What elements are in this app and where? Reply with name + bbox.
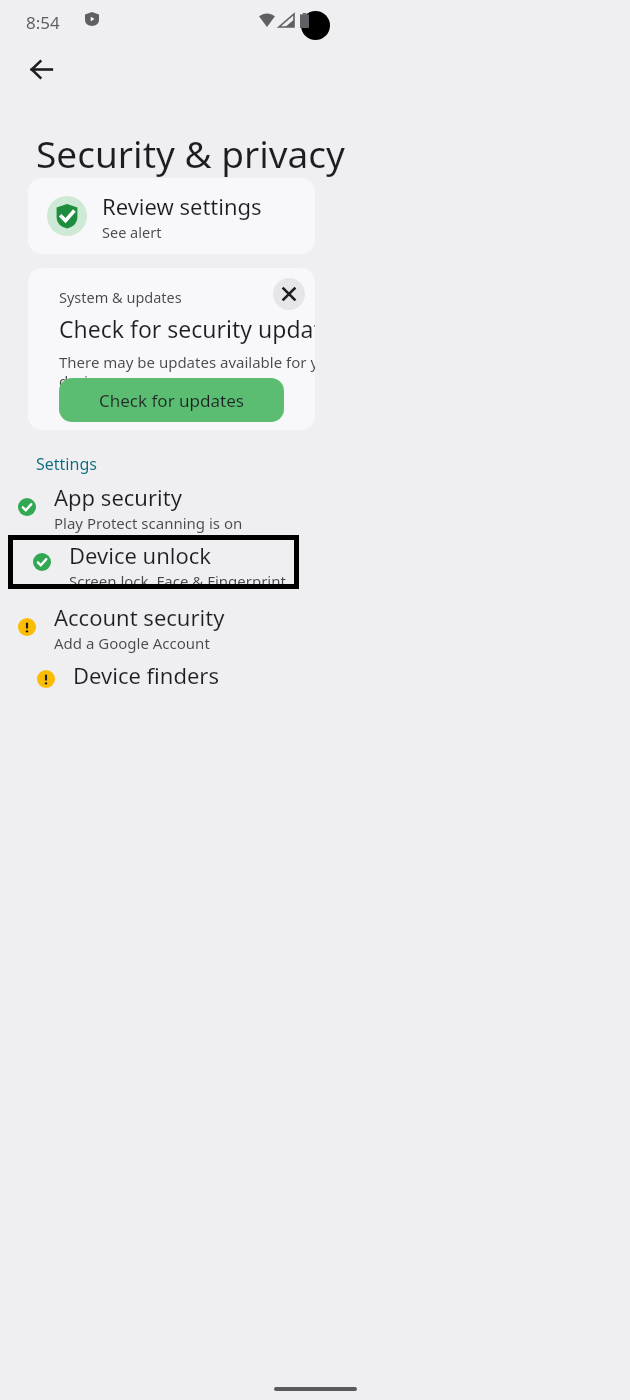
staticText: Device finders xyxy=(73,660,219,690)
button[interactable]: Device finders xyxy=(0,660,630,700)
staticText: Review settings xyxy=(102,191,262,221)
staticText: Check for updates xyxy=(99,389,244,412)
button[interactable]: Account security xyxy=(0,600,630,654)
staticText: System & updates xyxy=(59,287,182,307)
staticText: Check for security updates xyxy=(59,313,315,344)
staticText: 8:54 xyxy=(26,11,60,34)
staticText: Settings xyxy=(36,453,97,475)
staticText: Screen lock, Face & Fingerprint Unlock xyxy=(69,571,294,584)
staticText: App security xyxy=(54,482,182,512)
staticText: Account security xyxy=(54,602,225,632)
button[interactable]: Review settings xyxy=(28,178,315,254)
staticText: Play Protect scanning is on xyxy=(54,513,243,533)
staticText: Security & privacy xyxy=(36,128,345,178)
button[interactable]: Device unlock xyxy=(13,540,294,584)
button[interactable]: Dismiss xyxy=(273,278,305,310)
button[interactable]: Check for updates xyxy=(59,378,284,422)
button[interactable]: Back xyxy=(16,44,66,94)
staticText: See alert xyxy=(102,222,162,242)
staticText: Add a Google Account xyxy=(54,633,210,653)
staticText: There may be updates available for your … xyxy=(59,352,315,391)
staticText: Device unlock xyxy=(69,540,212,570)
button[interactable]: App security xyxy=(0,480,630,534)
